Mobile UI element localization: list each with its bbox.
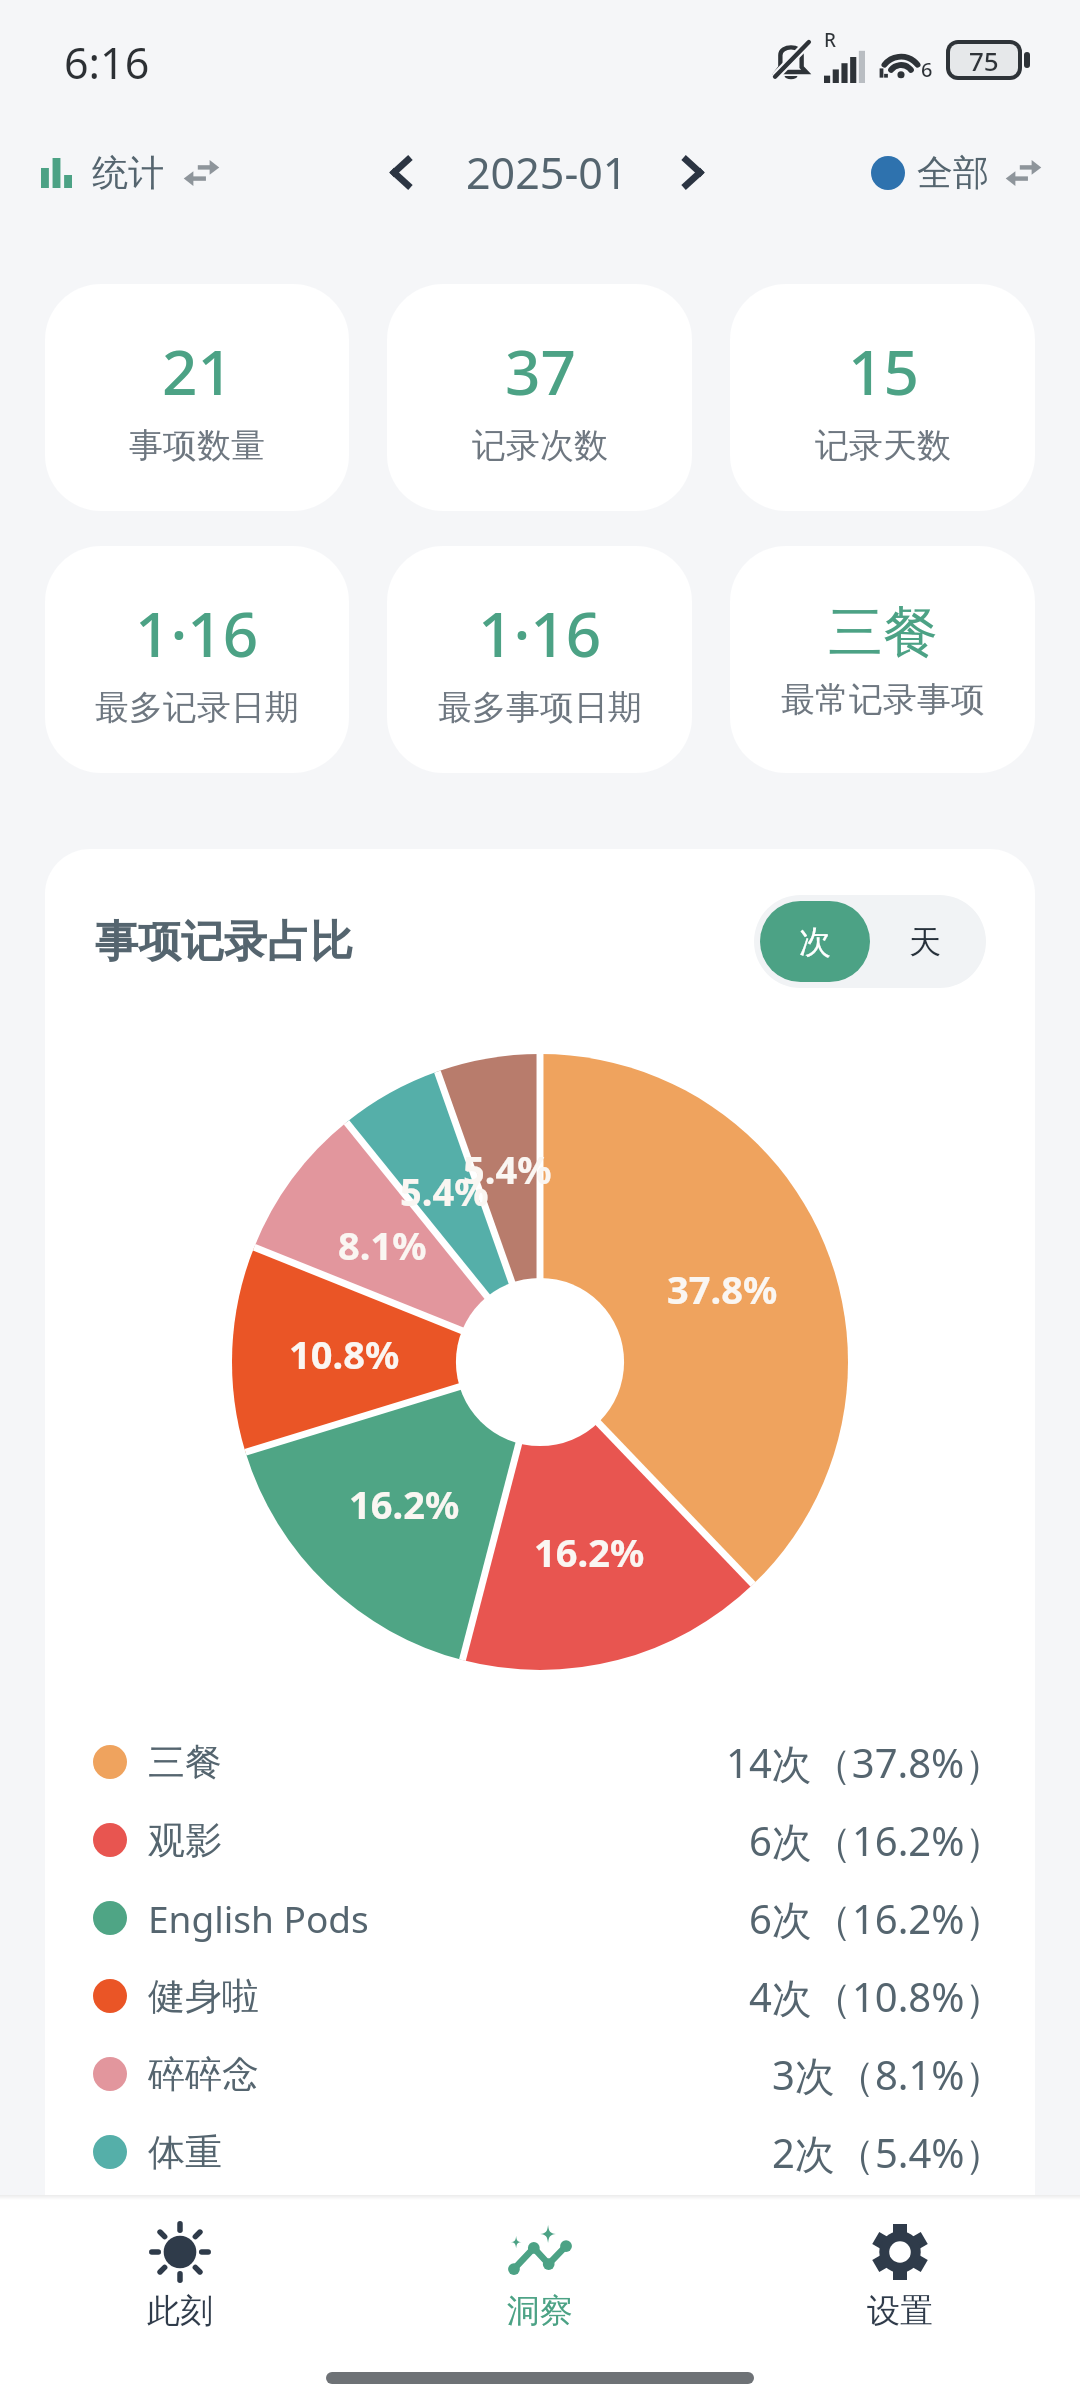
staticText: 记录次数: [472, 424, 608, 467]
button[interactable]: 1·16: [387, 546, 692, 773]
staticText: 事项数量: [129, 424, 265, 467]
button[interactable]: 天: [870, 901, 980, 982]
staticText: 16.2%: [349, 1478, 460, 1530]
button[interactable]: English Pods: [45, 1879, 1035, 1957]
staticText: 全部: [917, 150, 989, 195]
staticText: 碎碎念: [148, 2051, 259, 2098]
staticText: 最多记录日期: [95, 686, 299, 729]
staticText: 设置: [867, 2290, 933, 2332]
staticText: 16.2%: [534, 1526, 645, 1578]
staticText: 天: [909, 922, 941, 962]
button[interactable]: 碎碎念: [45, 2035, 1035, 2113]
staticText: 2025-01: [466, 143, 628, 202]
button[interactable]: 15: [730, 284, 1035, 511]
staticText: 1·16: [135, 591, 259, 675]
staticText: 6: [921, 56, 933, 83]
button[interactable]: 三餐: [730, 546, 1035, 773]
button[interactable]: 次: [760, 901, 870, 982]
button[interactable]: 统计: [35, 144, 226, 201]
staticText: 体重: [148, 2129, 222, 2176]
staticText: 健身啦: [148, 1973, 259, 2020]
button[interactable]: 37: [387, 284, 692, 511]
staticText: 8.1%: [338, 1219, 427, 1271]
staticText: 2次（5.4%）: [772, 2125, 1005, 2180]
staticText: 37.8%: [667, 1263, 778, 1315]
button[interactable]: 全部: [865, 144, 1048, 201]
button[interactable]: 三餐: [45, 1723, 1035, 1801]
button[interactable]: 健身啦: [45, 1957, 1035, 2035]
staticText: 5.4%: [463, 1143, 552, 1195]
staticText: 洞察: [507, 2290, 573, 2332]
staticText: 6次（16.2%）: [749, 1891, 1005, 1946]
staticText: 75: [969, 43, 999, 78]
button[interactable]: Next month: [658, 134, 728, 210]
staticText: R: [824, 27, 837, 53]
staticText: 最常记录事项: [781, 678, 985, 721]
button[interactable]: Previous month: [366, 134, 436, 210]
staticText: 三餐: [148, 1739, 222, 1786]
button[interactable]: 设置: [720, 2221, 1080, 2332]
button[interactable]: 观影: [45, 1801, 1035, 1879]
staticText: 观影: [148, 1817, 222, 1864]
button[interactable]: 体重: [45, 2113, 1035, 2191]
staticText: 1·16: [478, 591, 602, 675]
staticText: 统计: [92, 150, 164, 195]
staticText: 10.8%: [289, 1328, 400, 1380]
button[interactable]: 21: [45, 284, 349, 511]
button[interactable]: 洞察: [360, 2221, 720, 2332]
staticText: 三餐: [828, 598, 938, 667]
staticText: 3次（8.1%）: [772, 2047, 1005, 2102]
staticText: English Pods: [148, 1893, 369, 1943]
staticText: 37: [505, 329, 576, 413]
staticText: 6:16: [64, 33, 150, 92]
staticText: 6次（16.2%）: [749, 1813, 1005, 1868]
staticText: 15: [848, 329, 919, 413]
staticText: 5.4%: [400, 1165, 489, 1217]
staticText: 4次（10.8%）: [749, 1969, 1005, 2024]
staticText: 次: [799, 922, 831, 962]
button[interactable]: 此刻: [0, 2221, 360, 2332]
staticText: 14次（37.8%）: [726, 1735, 1005, 1790]
staticText: 记录天数: [815, 424, 951, 467]
staticText: 最多事项日期: [438, 686, 642, 729]
button[interactable]: 1·16: [45, 546, 349, 773]
staticText: 事项记录占比: [95, 915, 353, 969]
staticText: 21: [162, 329, 233, 413]
staticText: 此刻: [147, 2290, 213, 2332]
